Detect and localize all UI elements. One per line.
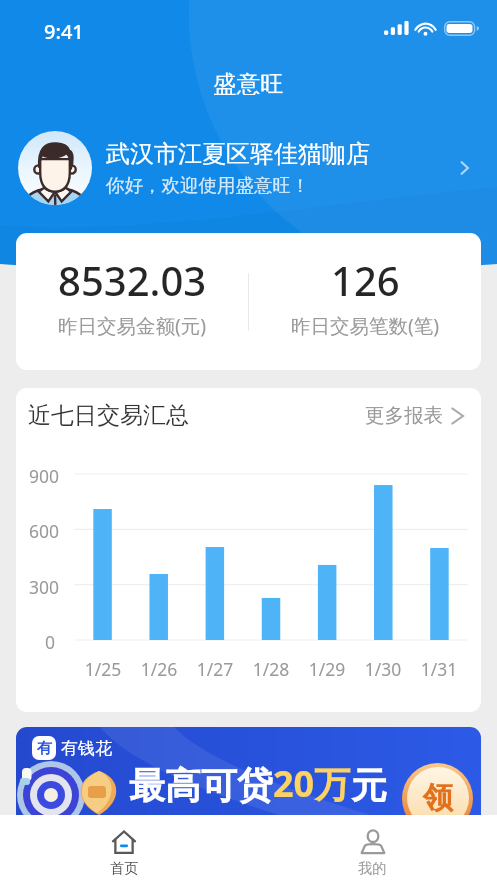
staticText: 首页 (110, 859, 139, 877)
staticText: 0 (45, 630, 56, 654)
staticText: 昨日交易笔数(笔) (291, 312, 440, 339)
staticText: 元 (351, 763, 387, 808)
staticText: 领 (423, 779, 453, 817)
staticText: 126 (331, 253, 400, 307)
staticText: 有钱花 (61, 738, 112, 759)
staticText: 20万 (273, 759, 351, 808)
button[interactable]: 126 (249, 233, 481, 370)
button[interactable]: 更多报表 (365, 399, 467, 432)
staticText: 更多报表 (365, 403, 443, 428)
staticText: 1/28 (243, 657, 299, 681)
staticText: 1/30 (355, 657, 411, 681)
staticText: 1/29 (299, 657, 355, 681)
staticText: 1/27 (187, 657, 243, 681)
staticText: 600 (29, 519, 60, 543)
staticText: 盛意旺 (0, 69, 497, 99)
staticText: 1/25 (75, 657, 131, 681)
staticText: 900 (29, 464, 60, 488)
staticText: 最高可贷 (129, 763, 273, 808)
button[interactable]: 有 (16, 727, 481, 837)
staticText: 8532.03 (58, 253, 207, 307)
staticText: 9:41 (44, 18, 84, 45)
staticText: 我的 (358, 859, 387, 877)
button[interactable]: 8532.03 (16, 233, 248, 370)
staticText: 武汉市江夏区驿佳猫咖店 (106, 139, 370, 169)
button[interactable]: 我的 (248, 815, 497, 883)
staticText: 1/31 (411, 657, 467, 681)
button[interactable]: 首页 (0, 815, 248, 883)
button[interactable]: 武汉市江夏区驿佳猫咖店 (0, 126, 497, 210)
staticText: 1/26 (131, 657, 187, 681)
staticText: 有 (37, 739, 52, 758)
staticText: 300 (29, 575, 60, 599)
staticText: 你好，欢迎使用盛意旺！ (106, 174, 310, 197)
staticText: 近七日交易汇总 (28, 401, 189, 430)
staticText: 昨日交易金额(元) (58, 312, 207, 339)
